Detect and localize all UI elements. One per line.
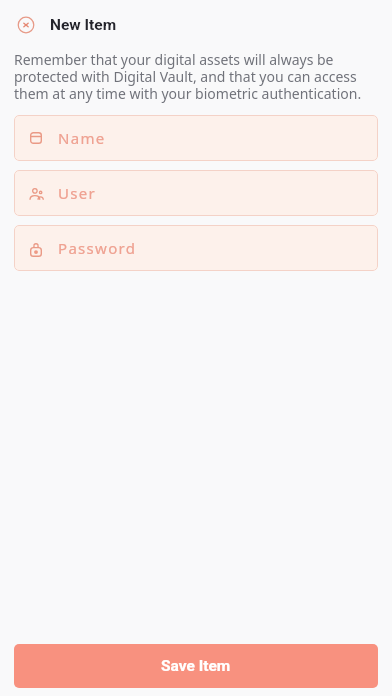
button[interactable]: User: [14, 170, 378, 216]
staticText: Password: [58, 238, 137, 258]
button[interactable]: Name: [14, 115, 378, 161]
button[interactable]: Save Item: [14, 644, 378, 688]
button[interactable]: Password: [14, 225, 378, 271]
staticText: Name: [58, 128, 106, 148]
staticText: User: [58, 183, 97, 203]
staticText: Save Item: [161, 657, 231, 675]
staticText: New Item: [50, 16, 117, 34]
button[interactable]: Close: [11, 10, 41, 40]
staticText: Remember that your digital assets will a…: [14, 50, 378, 103]
